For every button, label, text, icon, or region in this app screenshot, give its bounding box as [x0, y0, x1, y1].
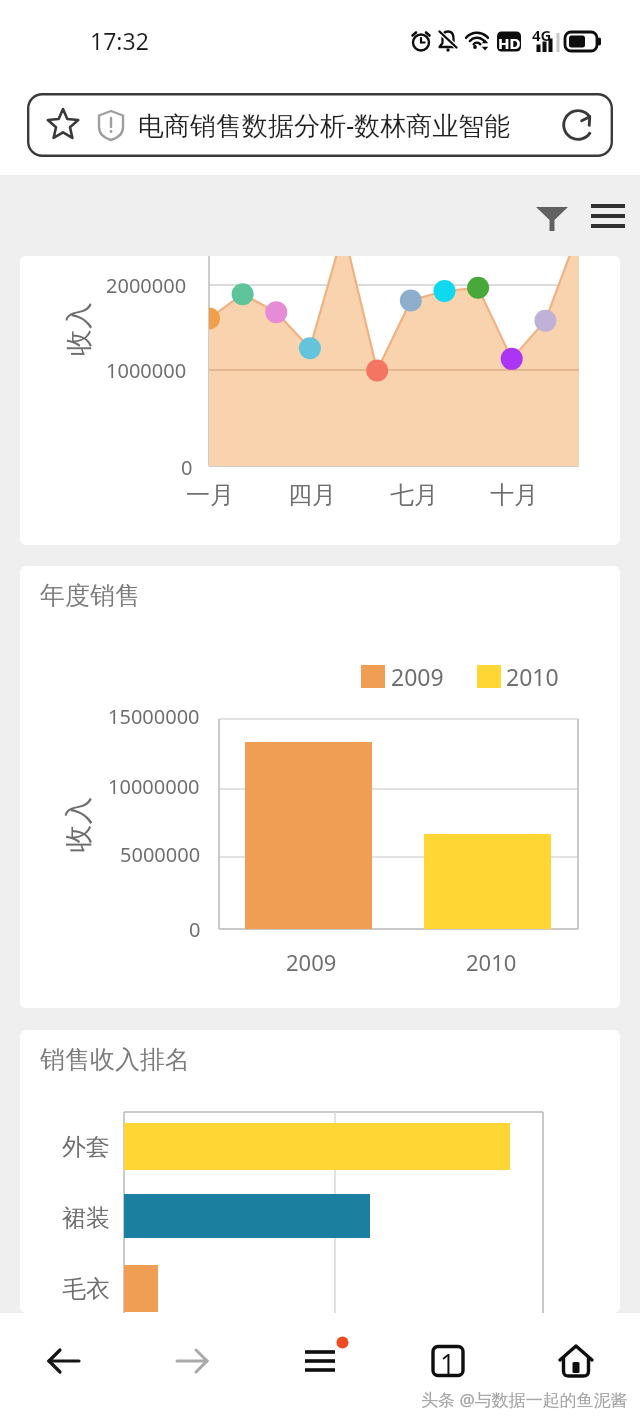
- staticText: 17:32: [90, 25, 149, 56]
- button[interactable]: Menu: [582, 190, 634, 242]
- button[interactable]: Filter: [526, 190, 578, 242]
- staticText: 2000000: [106, 272, 187, 299]
- staticText: 4G: [532, 25, 552, 45]
- staticText: 2009: [286, 947, 337, 977]
- button[interactable]: 销售收入排名: [20, 1030, 620, 1313]
- button[interactable]: Back: [20, 1317, 108, 1405]
- staticText: 2010: [466, 947, 517, 977]
- staticText: 0: [181, 454, 193, 481]
- staticText: 头条 @与数据一起的鱼泥酱: [421, 1388, 628, 1411]
- staticText: 四月: [288, 480, 336, 510]
- staticText: 收入: [60, 796, 95, 852]
- staticText: 5000000: [120, 841, 201, 868]
- button[interactable]: Home: [532, 1317, 620, 1405]
- staticText: 电商销售数据分析-数林商业智能: [138, 107, 511, 143]
- staticText: 10000000: [108, 773, 200, 800]
- staticText: 毛衣: [62, 1274, 110, 1304]
- staticText: 2010: [506, 661, 559, 692]
- staticText: 2009: [391, 661, 444, 692]
- button[interactable]: 电商销售数据分析-数林商业智能: [27, 93, 613, 157]
- staticText: 1000000: [106, 357, 187, 384]
- button[interactable]: Forward: [148, 1317, 236, 1405]
- staticText: 外套: [62, 1132, 110, 1162]
- staticText: 销售收入排名: [40, 1044, 190, 1075]
- staticText: 七月: [390, 480, 438, 510]
- staticText: 1: [440, 1345, 456, 1382]
- staticText: 年度销售: [40, 580, 140, 611]
- staticText: 15000000: [108, 703, 200, 730]
- staticText: 裙装: [62, 1203, 110, 1233]
- staticText: 一月: [186, 480, 234, 510]
- staticText: 收入: [62, 302, 96, 356]
- button[interactable]: Tabs: [404, 1317, 492, 1405]
- staticText: 十月: [490, 480, 538, 510]
- button[interactable]: 2000000: [20, 256, 620, 545]
- staticText: HD: [498, 33, 521, 53]
- button[interactable]: Menu: [276, 1317, 364, 1405]
- button[interactable]: 年度销售: [20, 566, 620, 1008]
- staticText: 0: [189, 916, 201, 943]
